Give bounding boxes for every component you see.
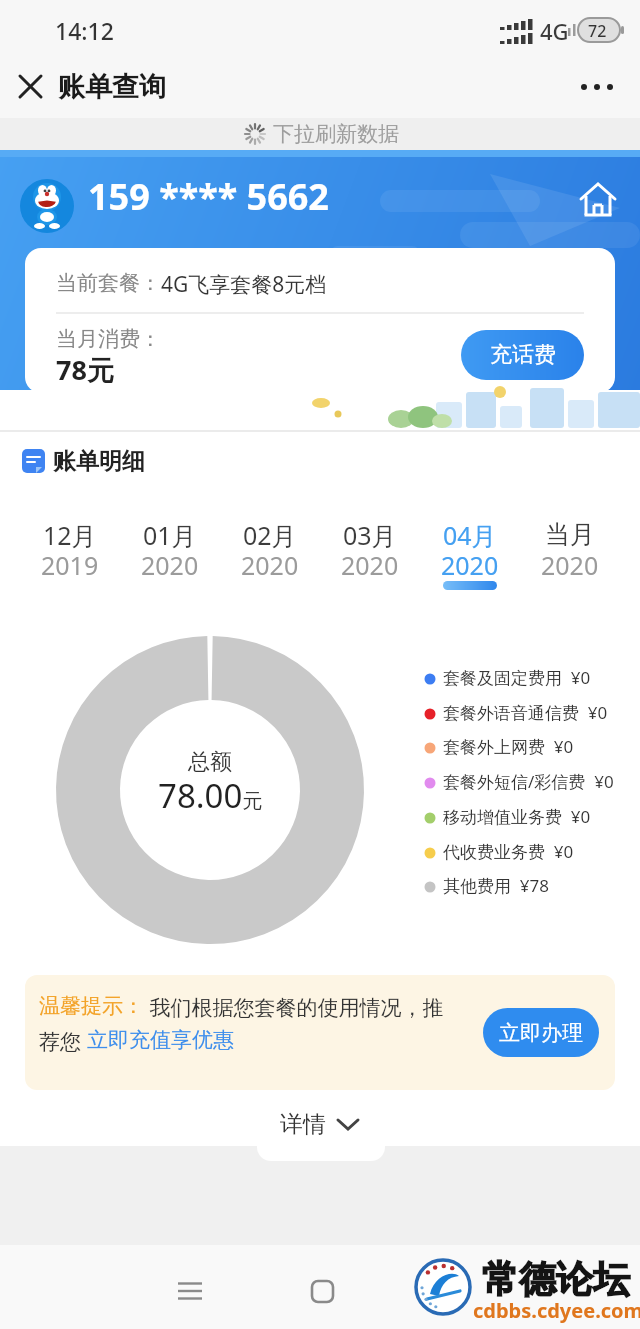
staticText: 移动增值业务费 ¥0 xyxy=(443,805,591,828)
staticText: 账单明细 xyxy=(53,447,145,476)
staticText: 代收费业务费 ¥0 xyxy=(443,840,574,863)
staticText: 总额 xyxy=(188,748,232,776)
staticText: 2020 xyxy=(341,548,399,580)
staticText: 我们根据您套餐的使用情况，推 xyxy=(144,993,444,1022)
staticText: 2020 xyxy=(441,548,499,580)
staticText: 其他费用 ¥78 xyxy=(443,874,550,897)
staticText: 当月 xyxy=(545,519,595,550)
staticText: 套餐外短信/彩信费 ¥0 xyxy=(443,770,614,793)
button[interactable]: 03月 xyxy=(320,518,420,550)
staticText: 立即充值享优惠 xyxy=(87,1027,234,1053)
staticText: 159 **** 5662 xyxy=(88,172,329,221)
staticText: 12月 xyxy=(43,518,97,550)
staticText: 14:12 xyxy=(55,15,114,46)
staticText: 套餐外语音通信费 ¥0 xyxy=(443,701,608,724)
button[interactable]: 02月 xyxy=(220,518,320,550)
staticText: 72 xyxy=(588,20,607,42)
staticText: 2019 xyxy=(41,548,99,580)
staticText: cdbbs.cdyee.com xyxy=(473,1297,640,1324)
staticText: 当前套餐： xyxy=(56,270,161,296)
staticText: 2020 xyxy=(541,548,599,580)
button[interactable] xyxy=(578,179,618,219)
staticText: 荐您 xyxy=(39,1027,87,1056)
staticText: 04月 xyxy=(443,518,497,550)
button[interactable]: 立即办理 xyxy=(483,1008,599,1057)
staticText: 03月 xyxy=(343,518,397,550)
button[interactable] xyxy=(20,76,41,97)
button[interactable]: 01月 xyxy=(120,518,220,550)
staticText: 立即办理 xyxy=(499,1020,583,1046)
staticText: 2020 xyxy=(141,548,199,580)
staticText: 78元 xyxy=(56,351,114,388)
button[interactable]: 04月 xyxy=(420,518,520,550)
staticText: 78.00元 xyxy=(158,773,263,818)
staticText: 套餐外上网费 ¥0 xyxy=(443,735,574,758)
staticText: 套餐及固定费用 ¥0 xyxy=(443,666,591,689)
staticText: 4G飞享套餐8元档 xyxy=(161,270,327,299)
staticText: 下拉刷新数据 xyxy=(273,121,399,147)
staticText: 02月 xyxy=(243,518,297,550)
staticText: 当月消费： xyxy=(56,326,161,352)
button[interactable]: 详情 xyxy=(280,1110,360,1139)
staticText: 2020 xyxy=(241,548,299,580)
staticText: 01月 xyxy=(143,518,197,550)
button[interactable]: 12月 xyxy=(20,518,120,550)
button[interactable] xyxy=(178,1282,202,1300)
staticText: 温馨提示： xyxy=(39,993,144,1019)
staticText: 常德论坛 xyxy=(482,1256,630,1303)
staticText: 账单查询 xyxy=(58,70,166,104)
button[interactable]: 充话费 xyxy=(461,330,584,380)
staticText: 详情 xyxy=(280,1110,326,1139)
staticText: 充话费 xyxy=(490,341,556,369)
button[interactable] xyxy=(311,1280,334,1303)
button[interactable] xyxy=(580,82,616,92)
button[interactable]: 当月 xyxy=(520,518,620,550)
staticText: 4G xyxy=(540,16,569,46)
